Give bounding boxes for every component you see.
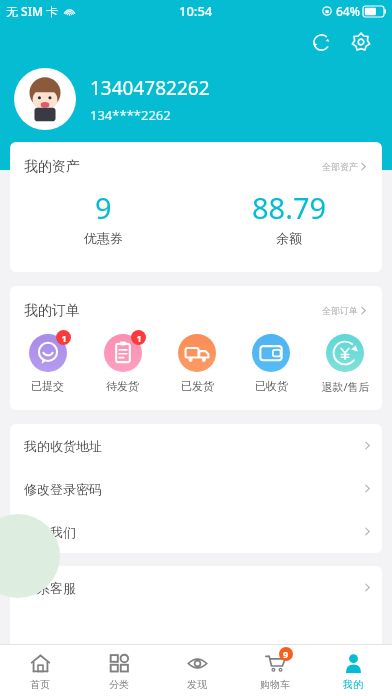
staticText: 已提交 [31,379,64,393]
staticText: 9 [95,188,112,227]
staticText: 64% [336,3,360,19]
staticText: 我的资产 [24,158,80,176]
staticText: 优惠券 [84,230,123,246]
staticText: 余额 [276,230,302,246]
staticText: 关于我们 [24,524,76,540]
button[interactable]: 退款/售后 [308,330,382,394]
staticText: 修改登录密码 [24,481,102,497]
staticText: 88.79 [252,188,327,227]
staticText: 待发货 [106,379,139,393]
button[interactable]: 9 [236,645,314,696]
staticText: 全部资产 [322,161,358,172]
button[interactable]: Refresh [304,25,338,59]
staticText: 9 [283,648,289,660]
staticText: 退款/售后 [321,379,370,394]
staticText: 联系客服 [24,580,76,596]
button[interactable]: 分类 [79,645,158,696]
staticText: 1 [61,332,67,344]
button[interactable]: 发现 [158,645,236,696]
staticText: 10:54 [179,2,213,20]
staticText: 已发货 [181,379,214,393]
button[interactable] [10,609,382,652]
staticText: 分类 [109,678,129,691]
button[interactable]: 联系客服 [10,566,382,609]
staticText: 我的收货地址 [24,438,102,454]
button[interactable]: 9 [10,184,196,250]
staticText: 我的订单 [24,302,80,320]
button[interactable]: 1 [10,330,85,393]
button[interactable]: 全部资产 [318,157,370,176]
button[interactable]: 已发货 [160,330,234,393]
button[interactable]: 88.79 [196,184,382,250]
staticText: 1 [136,332,142,344]
staticText: 购物车 [260,678,290,691]
button[interactable]: 全部订单 [318,301,370,320]
button[interactable]: 1 [85,330,160,393]
button[interactable]: 修改登录密码 [10,467,382,510]
button[interactable]: Settings [344,25,378,59]
staticText: 无 SIM 卡 [6,3,59,19]
button[interactable]: 我的 [314,645,392,696]
button[interactable]: 关于我们 [10,510,382,553]
button[interactable]: 我的收货地址 [10,424,382,467]
staticText: 发现 [187,678,207,691]
button[interactable]: 13404782262 [14,62,392,136]
staticText: 全部订单 [322,305,358,316]
staticText: 134****2262 [90,106,171,124]
staticText: 首页 [30,678,50,691]
button[interactable]: 首页 [0,645,79,696]
staticText: 我的 [343,678,363,691]
staticText: 13404782262 [90,75,210,101]
staticText: 已收货 [255,379,288,393]
button[interactable]: 已收货 [234,330,308,393]
